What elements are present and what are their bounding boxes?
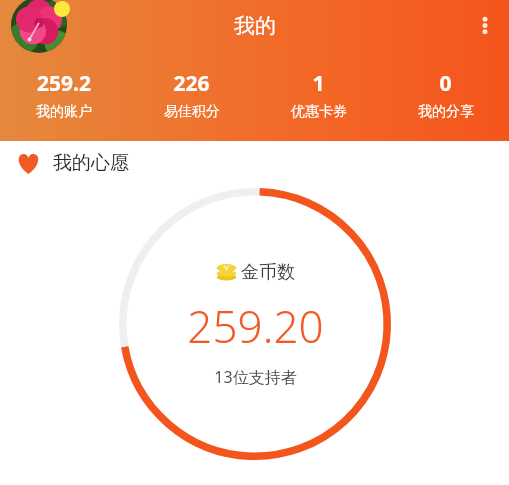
button[interactable]: More options [461,0,509,48]
staticText: 13位支持者 [214,366,297,388]
button[interactable]: Coin balance ring [116,185,394,463]
staticText: 226 [173,69,210,98]
button[interactable]: 259.2 [0,67,128,123]
staticText: 259.20 [187,296,324,356]
staticText: 金币数 [241,261,295,284]
staticText: 优惠卡券 [291,103,347,121]
staticText: 我的 [234,13,276,39]
button[interactable]: 我的心愿 [0,141,509,185]
staticText: 我的分享 [418,103,474,121]
staticText: 1 [312,69,325,98]
staticText: 我的账户 [36,103,92,121]
staticText: 易佳积分 [164,103,220,121]
button[interactable]: 0 [382,67,509,123]
button[interactable]: 226 [128,67,255,123]
staticText: 259.2 [37,69,91,98]
button[interactable]: Profile photo [11,0,67,53]
staticText: 我的心愿 [53,151,129,175]
button[interactable]: 1 [255,67,382,123]
staticText: 0 [439,69,452,98]
